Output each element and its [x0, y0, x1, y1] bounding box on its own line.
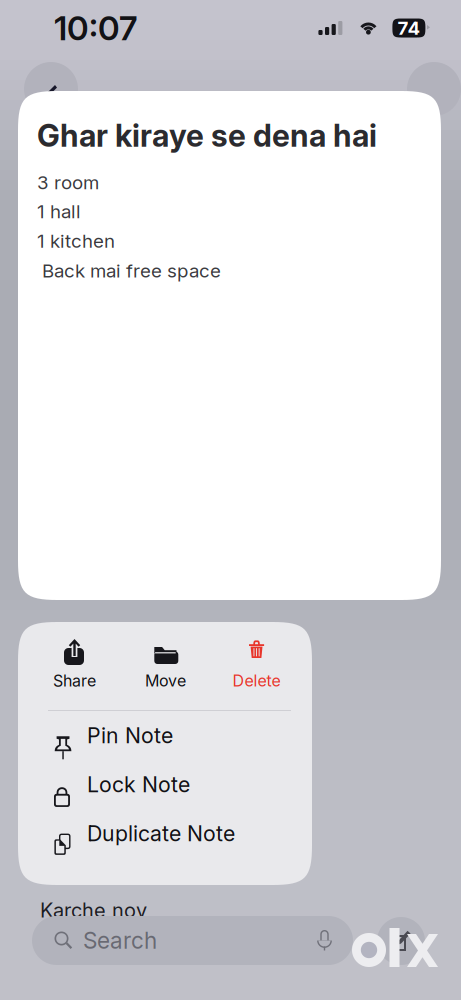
- staticText: Duplicate Note: [87, 821, 235, 846]
- button[interactable]: Share: [29, 622, 120, 710]
- staticText: Back mai free space: [37, 259, 221, 282]
- button[interactable]: Duplicate Note: [18, 809, 312, 858]
- button[interactable]: Back: [24, 62, 78, 116]
- button[interactable]: Search: [32, 916, 353, 965]
- button[interactable]: More: [407, 62, 461, 116]
- staticText: 3 room: [37, 171, 99, 194]
- button[interactable]: Move: [120, 622, 211, 710]
- staticText: 10:07: [54, 8, 137, 48]
- staticText: Share: [53, 671, 96, 690]
- staticText: 1 kitchen: [37, 230, 115, 252]
- button[interactable]: New Note: [377, 917, 425, 965]
- staticText: Search: [83, 927, 157, 954]
- staticText: Move: [145, 671, 186, 690]
- button[interactable]: Delete: [211, 622, 302, 710]
- staticText: Delete: [232, 671, 280, 690]
- staticText: 74: [397, 17, 420, 39]
- staticText: Lock Note: [87, 772, 190, 797]
- button[interactable]: Lock Note: [18, 760, 312, 809]
- staticText: Ghar kiraye se dena hai: [37, 117, 377, 154]
- staticText: Karche nov: [40, 898, 147, 922]
- button[interactable]: Pin Note: [18, 711, 312, 760]
- staticText: 1 hall: [37, 200, 81, 223]
- staticText: Pin Note: [87, 723, 173, 748]
